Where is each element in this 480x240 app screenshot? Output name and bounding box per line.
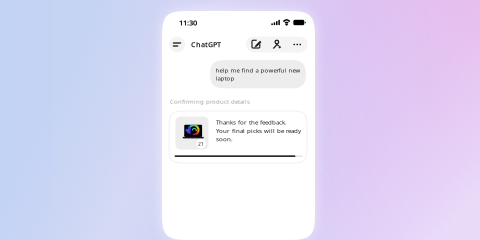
staticText: ChatGPT <box>191 40 221 49</box>
staticText: 11:30 <box>179 17 197 28</box>
staticText: help me find a powerful new laptop <box>215 66 300 82</box>
button[interactable]: Menu <box>169 36 185 52</box>
button[interactable]: More options <box>287 36 307 52</box>
staticText: Thanks for the feedback. Your final pick… <box>216 118 301 143</box>
button[interactable]: Add people <box>266 36 287 52</box>
staticText: Confirming product details <box>170 97 250 105</box>
button[interactable]: ChatGPT <box>185 40 221 49</box>
button[interactable]: New chat <box>246 36 266 52</box>
staticText: 21 <box>198 140 204 147</box>
